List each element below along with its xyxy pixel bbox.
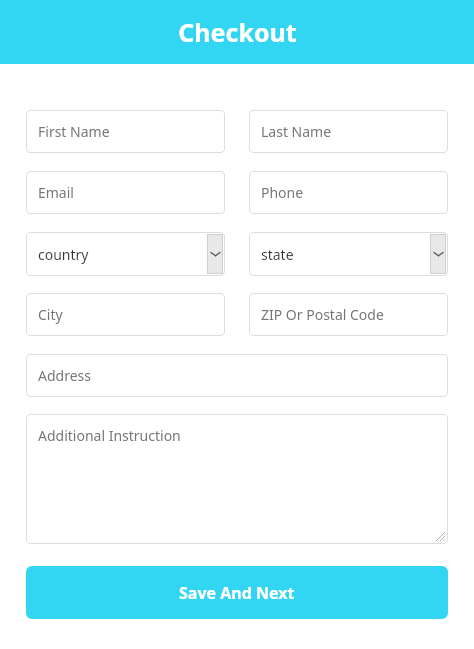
staticText: City [38,305,63,324]
staticText: First Name [38,122,110,141]
staticText: Phone [261,183,304,202]
button[interactable]: City [26,293,225,336]
staticText: country [38,245,89,264]
button[interactable]: Additional Instruction [26,414,448,544]
staticText: Last Name [261,122,332,141]
button[interactable]: Save And Next [26,566,448,619]
staticText: Additional Instruction [38,426,181,445]
button[interactable]: Last Name [249,110,448,153]
button[interactable]: Email [26,171,225,214]
button[interactable]: Phone [249,171,448,214]
button[interactable]: country [26,232,225,276]
button[interactable]: ZIP Or Postal Code [249,293,448,336]
button[interactable]: state [249,232,448,276]
button[interactable]: Address [26,354,448,397]
staticText: Save And Next [179,582,295,604]
other: Open state dropdown [430,234,446,274]
staticText: ZIP Or Postal Code [261,305,384,324]
staticText: Address [38,366,91,385]
staticText: Email [38,183,74,202]
staticText: Checkout [178,15,297,49]
staticText: state [261,245,294,264]
button[interactable]: First Name [26,110,225,153]
other: Open country dropdown [207,234,223,274]
